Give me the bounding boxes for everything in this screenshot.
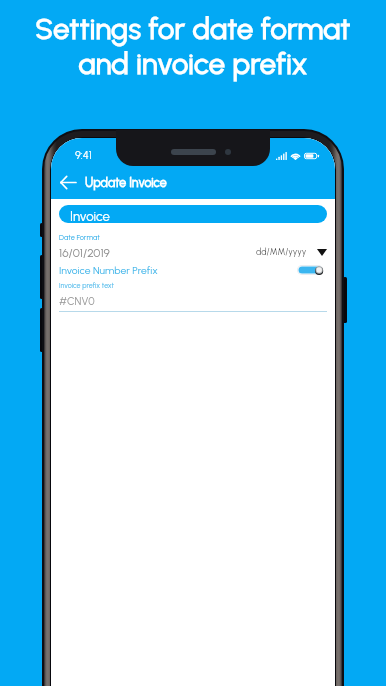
staticText: Update Invoice xyxy=(85,175,167,190)
staticText: 9:41 xyxy=(75,149,92,162)
staticText: Invoice xyxy=(70,208,110,223)
staticText: Date Format xyxy=(59,233,100,242)
staticText: Invoice prefix text xyxy=(59,281,115,290)
staticText: Settings for date format and invoice pre… xyxy=(35,11,351,82)
button[interactable]: Back xyxy=(55,167,81,197)
staticText: 16/01/2019 xyxy=(59,246,110,259)
button[interactable]: Toggle invoice number prefix xyxy=(297,265,323,275)
staticText: #CNV0 xyxy=(59,295,95,308)
button[interactable]: Invoice xyxy=(59,205,327,223)
staticText: Invoice Number Prefix xyxy=(59,264,158,275)
button[interactable]: 16/01/2019 xyxy=(59,246,327,259)
staticText: dd/MM/yyyy xyxy=(256,247,307,258)
